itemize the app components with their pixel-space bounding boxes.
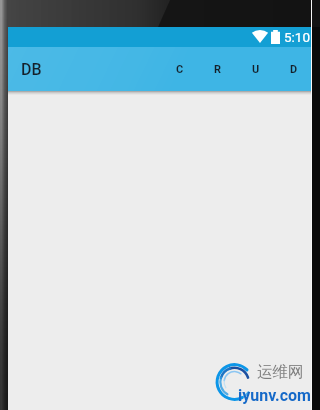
other: Battery full	[271, 30, 280, 44]
button[interactable]: C	[161, 47, 199, 91]
other: Wi-Fi signal full	[247, 30, 273, 43]
staticText: 运维网	[257, 362, 304, 382]
button[interactable]: R	[199, 47, 237, 91]
staticText: 5:10	[284, 29, 311, 45]
staticText: DB	[21, 60, 42, 79]
button[interactable]: U	[237, 47, 275, 91]
staticText: C	[176, 63, 184, 76]
staticText: D	[290, 63, 298, 76]
button[interactable]: D	[275, 47, 313, 91]
staticText: iyunv.com	[238, 386, 311, 405]
staticText: U	[252, 63, 260, 76]
staticText: R	[214, 63, 222, 76]
